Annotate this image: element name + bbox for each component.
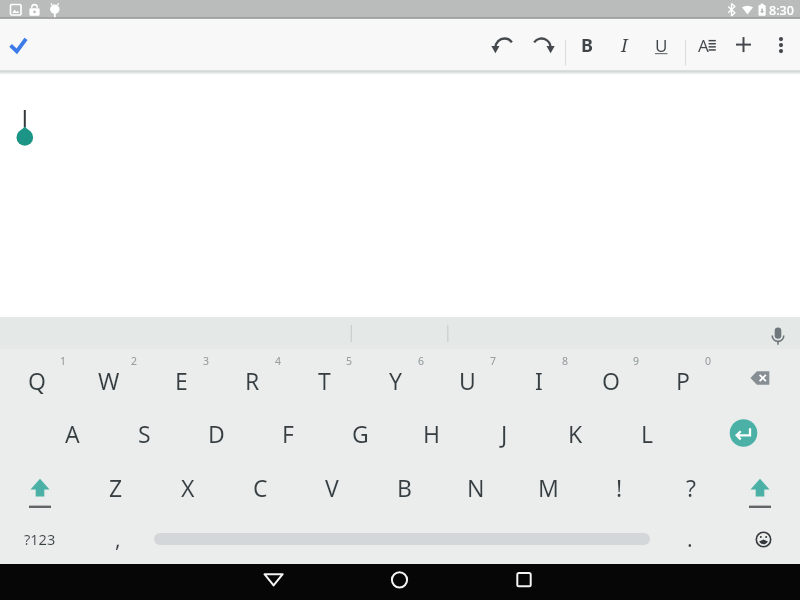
staticText: A — [65, 418, 80, 449]
staticText: C — [253, 472, 268, 503]
staticText: D — [208, 418, 225, 449]
button[interactable]: B — [368, 460, 440, 514]
staticText: H — [423, 418, 441, 449]
staticText: 2 — [131, 354, 138, 368]
staticText: B — [581, 33, 593, 58]
button[interactable] — [686, 22, 730, 68]
staticText: T — [318, 365, 331, 396]
button[interactable] — [759, 22, 800, 68]
staticText: U — [459, 365, 476, 396]
staticText: 1 — [60, 354, 67, 368]
button[interactable] — [728, 514, 800, 564]
staticText: 0 — [705, 354, 712, 368]
button[interactable]: D — [180, 406, 252, 460]
staticText: 5 — [346, 354, 353, 368]
button[interactable] — [727, 460, 800, 514]
button[interactable] — [492, 564, 556, 600]
button[interactable]: ? — [655, 460, 727, 514]
staticText: V — [325, 472, 339, 503]
staticText: N — [467, 472, 485, 503]
button[interactable]: L — [611, 406, 683, 460]
staticText: U — [655, 34, 668, 57]
button[interactable] — [0, 460, 80, 514]
staticText: M — [538, 472, 559, 503]
button[interactable]: E — [145, 353, 217, 407]
staticText: Q — [28, 365, 46, 396]
staticText: I — [535, 365, 543, 396]
staticText: E — [175, 365, 188, 396]
button[interactable] — [368, 564, 432, 600]
staticText: R — [245, 365, 260, 396]
button[interactable]: ! — [583, 460, 655, 514]
staticText: G — [352, 418, 369, 449]
staticText: Y — [389, 365, 403, 396]
button[interactable]: Z — [80, 460, 152, 514]
staticText: X — [181, 472, 195, 503]
button[interactable] — [718, 353, 800, 407]
button[interactable]: H — [396, 406, 468, 460]
button[interactable]: P — [647, 353, 719, 407]
staticText: ? — [686, 472, 696, 503]
staticText: Z — [109, 472, 123, 503]
button[interactable]: S — [108, 406, 180, 460]
staticText: , — [115, 525, 121, 554]
button[interactable]: B — [565, 22, 609, 68]
button[interactable]: X — [152, 460, 224, 514]
button[interactable] — [242, 564, 306, 600]
button[interactable]: N — [440, 460, 512, 514]
staticText: F — [282, 418, 294, 449]
staticText: ! — [616, 472, 623, 503]
staticText: I — [621, 33, 628, 58]
button[interactable]: I — [602, 22, 646, 68]
staticText: 7 — [490, 354, 497, 368]
button[interactable] — [154, 514, 650, 564]
button[interactable]: V — [296, 460, 368, 514]
staticText: J — [501, 418, 508, 449]
button[interactable]: . — [652, 514, 728, 564]
staticText: 8:30 — [769, 2, 794, 19]
staticText: . — [687, 525, 693, 554]
staticText: S — [138, 418, 151, 449]
staticText: 6 — [418, 354, 425, 368]
button[interactable]: O — [575, 353, 647, 407]
staticText: K — [568, 418, 583, 449]
button[interactable] — [520, 22, 564, 68]
button[interactable]: M — [512, 460, 584, 514]
button[interactable]: Y — [360, 353, 432, 407]
staticText: B — [397, 472, 412, 503]
button[interactable] — [0, 22, 44, 68]
button[interactable]: F — [252, 406, 324, 460]
button[interactable] — [483, 22, 527, 68]
button[interactable]: A — [36, 406, 108, 460]
staticText: 8 — [562, 354, 569, 368]
button[interactable]: K — [539, 406, 611, 460]
staticText: A — [698, 34, 709, 57]
button[interactable]: ?123 — [0, 514, 80, 564]
staticText: O — [602, 365, 620, 396]
button[interactable]: , — [82, 514, 154, 564]
button[interactable]: R — [216, 353, 288, 407]
staticText: 9 — [633, 354, 640, 368]
button[interactable] — [752, 317, 800, 349]
button[interactable] — [702, 406, 800, 460]
staticText: P — [676, 365, 690, 396]
button[interactable]: I — [503, 353, 575, 407]
button[interactable]: U — [431, 353, 503, 407]
button[interactable] — [722, 22, 766, 68]
staticText: L — [641, 418, 654, 449]
staticText: ?123 — [24, 529, 56, 549]
button[interactable]: U — [639, 22, 683, 68]
button[interactable]: C — [224, 460, 296, 514]
button[interactable]: G — [324, 406, 396, 460]
staticText: 4 — [275, 354, 282, 368]
button[interactable]: W — [73, 353, 145, 407]
staticText: 3 — [203, 354, 210, 368]
button[interactable]: J — [468, 406, 540, 460]
staticText: W — [98, 365, 120, 396]
button[interactable]: T — [288, 353, 360, 407]
button[interactable]: Q — [1, 353, 73, 407]
